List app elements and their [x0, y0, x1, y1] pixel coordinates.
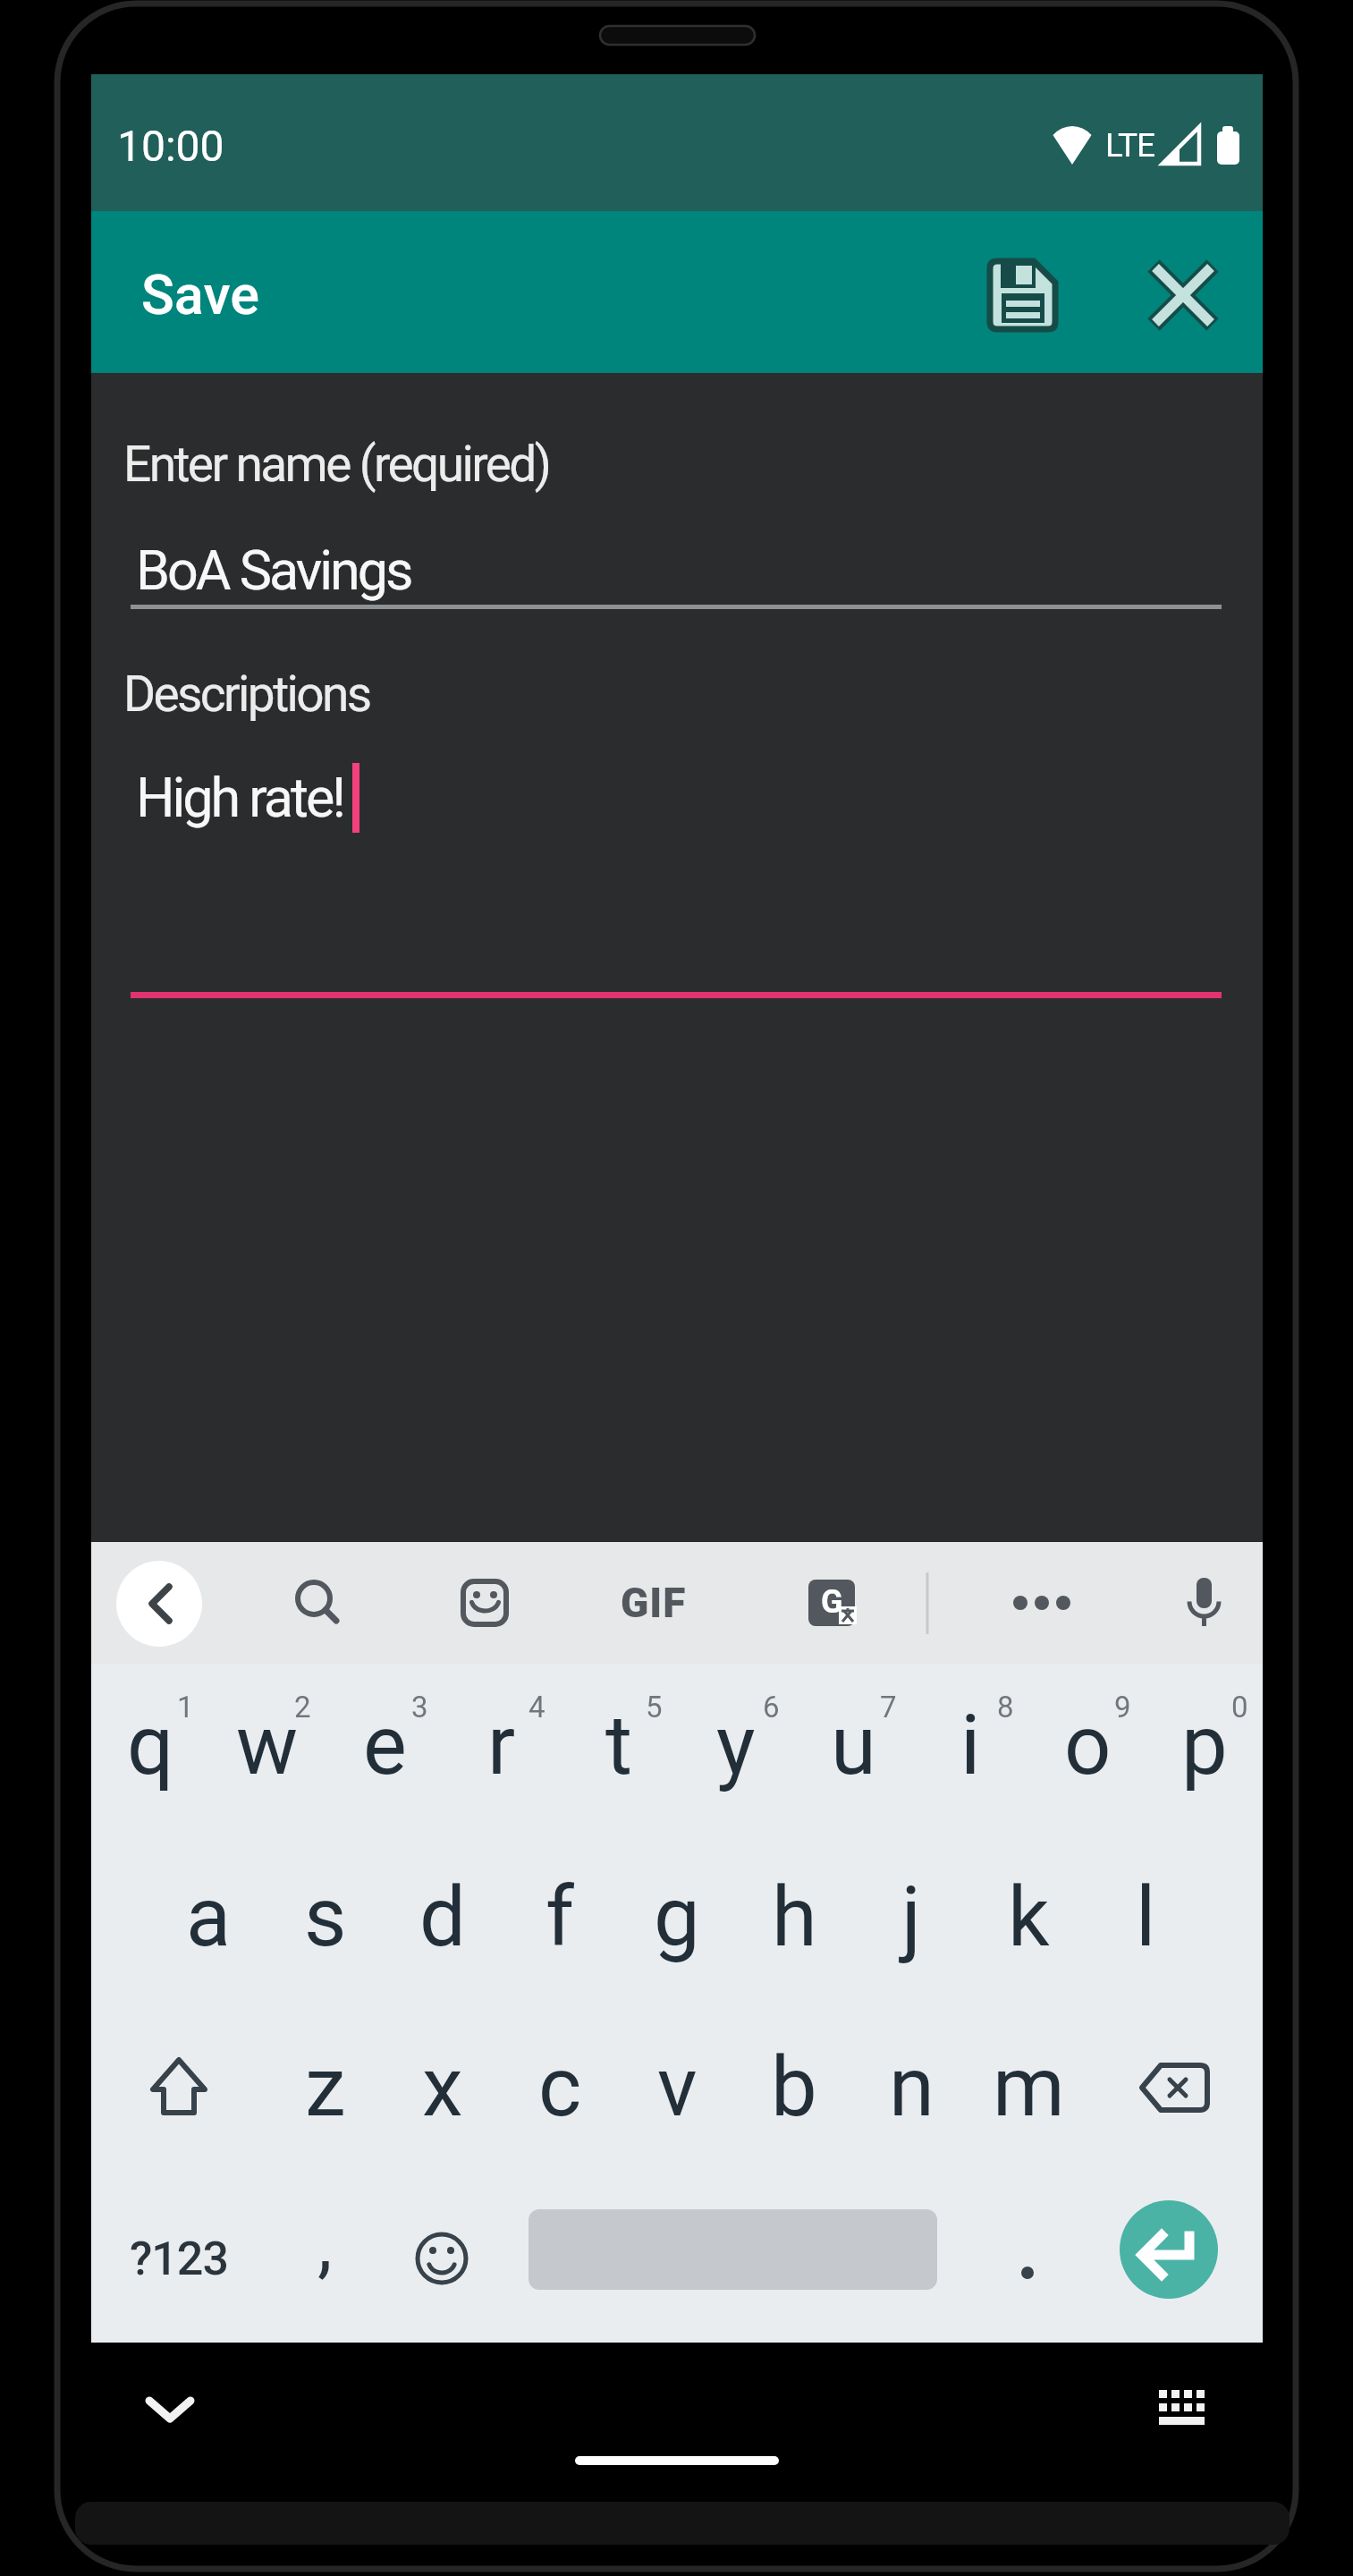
staticText: y: [716, 1698, 756, 1794]
staticText: 2: [294, 1690, 311, 1724]
staticText: x: [422, 2039, 463, 2136]
staticText: c: [538, 2039, 582, 2136]
button[interactable]: [997, 1560, 1087, 1648]
button[interactable]: [735, 2004, 852, 2173]
button[interactable]: [1087, 2004, 1263, 2173]
staticText: BoA Savings: [136, 538, 411, 602]
button[interactable]: [677, 1664, 794, 1834]
staticText: z: [305, 2039, 346, 2136]
button[interactable]: [1146, 2375, 1217, 2446]
button[interactable]: [1146, 1664, 1263, 1834]
button[interactable]: [440, 1560, 529, 1648]
staticText: k: [1008, 1869, 1050, 1966]
button[interactable]: [149, 1834, 266, 2004]
button[interactable]: [131, 756, 1222, 1002]
staticText: 7: [880, 1690, 897, 1724]
button[interactable]: [618, 1834, 735, 2004]
staticText: q: [127, 1698, 174, 1794]
button[interactable]: [266, 2173, 384, 2343]
button[interactable]: [443, 1664, 560, 1834]
staticText: j: [901, 1869, 922, 1966]
button[interactable]: [794, 1664, 911, 1834]
button[interactable]: [131, 532, 1222, 613]
button[interactable]: [609, 1560, 698, 1648]
staticText: Descriptions: [123, 665, 370, 723]
button[interactable]: [384, 2173, 501, 2343]
staticText: Enter name (required): [123, 436, 550, 493]
staticText: 6: [763, 1690, 780, 1724]
button[interactable]: [114, 1560, 204, 1648]
button[interactable]: [787, 1560, 876, 1648]
button[interactable]: [969, 2173, 1087, 2343]
button[interactable]: [529, 2209, 937, 2290]
staticText: ,: [317, 2199, 333, 2287]
button[interactable]: [1087, 1834, 1204, 2004]
staticText: o: [1064, 1698, 1112, 1794]
staticText: l: [1136, 1869, 1156, 1966]
button[interactable]: [326, 1664, 443, 1834]
button[interactable]: [501, 1834, 618, 2004]
button[interactable]: [91, 1664, 208, 1834]
staticText: a: [186, 1869, 232, 1966]
staticText: ?123: [130, 2232, 228, 2286]
button[interactable]: [384, 2004, 501, 2173]
button[interactable]: [1134, 246, 1232, 344]
staticText: f: [545, 1869, 574, 1966]
staticText: 3: [411, 1690, 428, 1724]
staticText: 10:00: [117, 121, 224, 171]
button[interactable]: [969, 2004, 1087, 2173]
button[interactable]: [501, 2004, 618, 2173]
staticText: s: [304, 1869, 347, 1966]
staticText: m: [993, 2039, 1065, 2136]
button[interactable]: [273, 1560, 362, 1648]
staticText: r: [487, 1698, 516, 1794]
staticText: n: [889, 2039, 934, 2136]
button[interactable]: [91, 2173, 266, 2343]
button[interactable]: [266, 1834, 384, 2004]
staticText: v: [657, 2039, 698, 2136]
button[interactable]: [911, 1664, 1028, 1834]
button[interactable]: [384, 1834, 501, 2004]
staticText: GIF: [621, 1579, 687, 1627]
button[interactable]: [852, 2004, 969, 2173]
staticText: Save: [141, 263, 259, 326]
button[interactable]: [1120, 2200, 1218, 2299]
staticText: High rate!: [136, 766, 344, 829]
button[interactable]: [618, 2004, 735, 2173]
button[interactable]: [91, 2004, 266, 2173]
staticText: t: [605, 1698, 633, 1794]
staticText: 0: [1231, 1690, 1248, 1724]
staticText: p: [1181, 1698, 1228, 1794]
staticText: w: [236, 1698, 299, 1794]
staticText: u: [831, 1698, 876, 1794]
button[interactable]: [560, 1664, 677, 1834]
staticText: 4: [529, 1690, 545, 1724]
button[interactable]: [969, 1834, 1087, 2004]
button[interactable]: [1159, 1560, 1248, 1648]
staticText: h: [772, 1869, 817, 1966]
button[interactable]: [134, 2375, 206, 2446]
button[interactable]: [852, 1834, 969, 2004]
button[interactable]: [208, 1664, 326, 1834]
staticText: 1: [177, 1690, 194, 1724]
button[interactable]: [266, 2004, 384, 2173]
staticText: g: [654, 1869, 700, 1966]
staticText: i: [960, 1698, 981, 1794]
staticText: G: [821, 1583, 843, 1621]
staticText: 9: [1114, 1690, 1131, 1724]
button[interactable]: [974, 246, 1072, 344]
button[interactable]: [735, 1834, 852, 2004]
staticText: LTE: [1105, 126, 1155, 165]
staticText: 5: [646, 1690, 663, 1724]
staticText: b: [771, 2039, 817, 2136]
staticText: e: [363, 1698, 407, 1794]
staticText: 8: [997, 1690, 1014, 1724]
button[interactable]: [1028, 1664, 1146, 1834]
staticText: d: [419, 1869, 466, 1966]
